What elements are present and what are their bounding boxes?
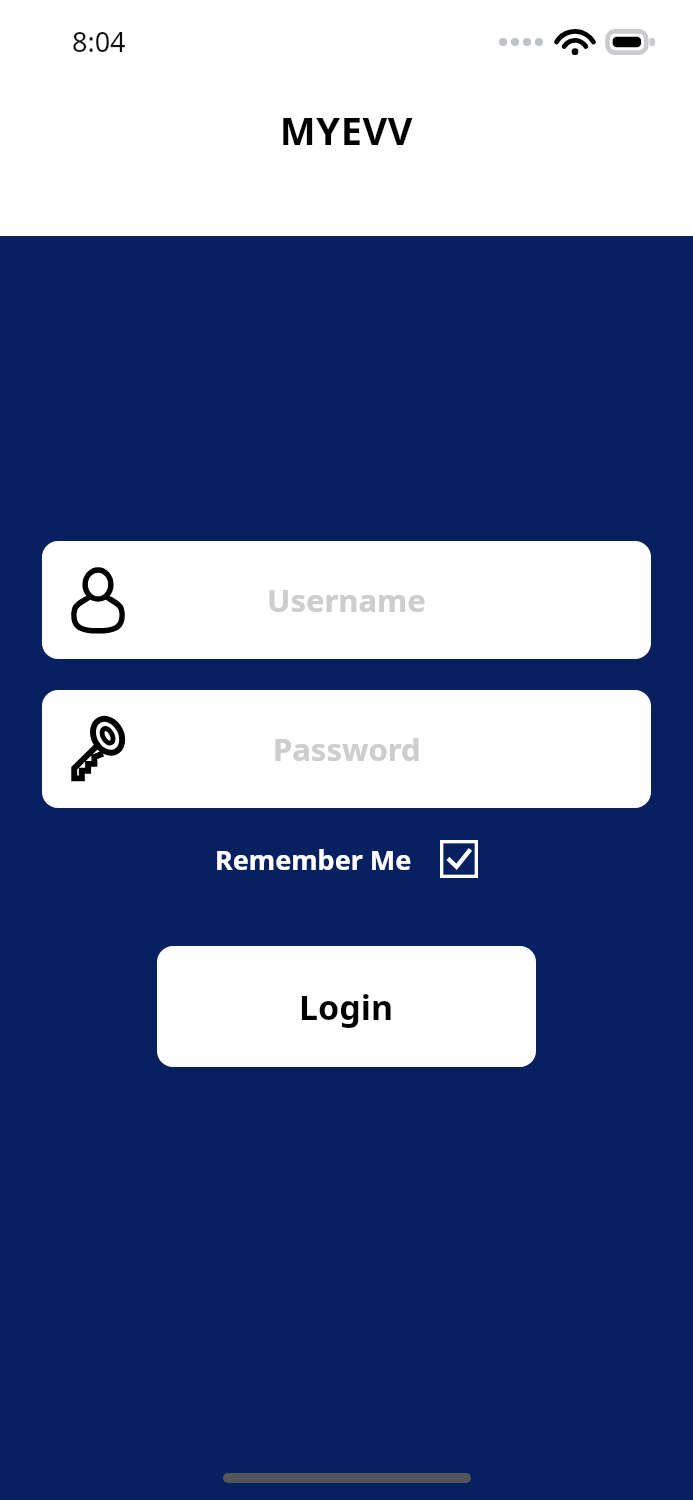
staticText: Login	[299, 984, 394, 1030]
staticText: MYEVV	[0, 104, 693, 156]
other: Remember Me, checked	[440, 840, 478, 878]
staticText: Remember Me	[215, 841, 412, 878]
button[interactable]: Remember Me	[209, 834, 484, 884]
staticText: Password	[273, 728, 421, 770]
staticText: Username	[267, 579, 426, 621]
button[interactable]: Login	[157, 946, 536, 1067]
button[interactable]: Username	[42, 541, 651, 659]
staticText: 8:04	[72, 23, 126, 60]
button[interactable]: Password	[42, 690, 651, 808]
other: Password	[65, 716, 131, 782]
other: Username	[67, 569, 129, 631]
